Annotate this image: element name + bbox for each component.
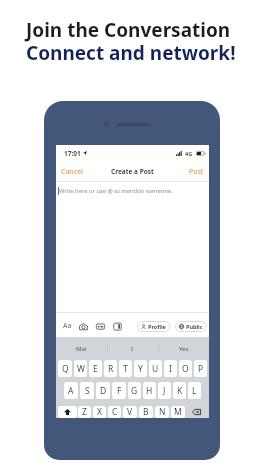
button[interactable]: Yes xyxy=(158,337,209,360)
staticText: Cancel xyxy=(61,167,83,177)
staticText: J xyxy=(163,385,166,397)
button[interactable]: M xyxy=(171,406,185,418)
button[interactable]: Mai xyxy=(56,337,107,360)
staticText: V xyxy=(127,406,133,418)
staticText: L xyxy=(192,385,197,397)
button[interactable]: F xyxy=(112,382,126,399)
staticText: 17:01 xyxy=(64,149,81,158)
staticText: Connect and network! xyxy=(26,40,236,66)
button[interactable]: T xyxy=(119,360,132,377)
staticText: N xyxy=(159,406,166,418)
staticText: Join the Conversation xyxy=(26,17,231,43)
button[interactable]: A xyxy=(64,382,78,399)
staticText: Create a Post xyxy=(111,167,154,176)
button[interactable]: X xyxy=(93,406,106,418)
button[interactable]: V xyxy=(123,406,137,418)
staticText: C xyxy=(112,406,118,418)
staticText: K xyxy=(177,385,183,397)
staticText: U xyxy=(152,363,159,375)
staticText: 4G xyxy=(185,150,193,157)
button[interactable]: Cancel xyxy=(60,161,84,182)
staticText: Write here or use @ to mention someone. xyxy=(59,187,173,195)
button[interactable]: W xyxy=(74,360,87,377)
button[interactable]: Z xyxy=(78,406,91,418)
button[interactable]: Backspace xyxy=(186,406,207,418)
button[interactable]: Aa xyxy=(62,321,72,331)
staticText: Mai xyxy=(76,345,87,353)
button[interactable]: E xyxy=(89,360,102,377)
staticText: F xyxy=(117,385,122,397)
button[interactable]: G xyxy=(128,382,141,399)
staticText: Aa xyxy=(63,321,72,331)
button[interactable]: D xyxy=(96,382,110,399)
staticText: T xyxy=(123,363,128,375)
staticText: H xyxy=(146,385,153,397)
staticText: W xyxy=(77,363,85,375)
button[interactable]: Post xyxy=(189,161,204,182)
button[interactable]: U xyxy=(149,360,162,377)
staticText: Yes xyxy=(179,345,189,353)
button[interactable]: Photo xyxy=(79,322,88,331)
staticText: Profile xyxy=(148,323,166,330)
staticText: E xyxy=(93,363,98,375)
staticText: B xyxy=(143,406,149,418)
button[interactable]: L xyxy=(188,382,201,399)
button[interactable]: R xyxy=(104,360,117,377)
button[interactable]: GIF xyxy=(96,322,105,331)
button[interactable]: Q xyxy=(58,360,72,377)
button[interactable]: Public xyxy=(175,321,207,332)
button[interactable]: C xyxy=(108,406,121,418)
staticText: P xyxy=(198,363,204,375)
staticText: Q xyxy=(62,363,69,375)
button[interactable]: S xyxy=(80,382,94,399)
staticText: G xyxy=(131,385,138,397)
staticText: D xyxy=(100,385,107,397)
staticText: Post xyxy=(189,167,204,177)
staticText: O xyxy=(182,363,189,375)
button[interactable]: Profile xyxy=(137,321,170,332)
staticText: I xyxy=(169,363,172,375)
button[interactable]: Y xyxy=(134,360,147,377)
button[interactable]: Attachment xyxy=(113,322,122,331)
staticText: S xyxy=(85,385,90,397)
button[interactable]: P xyxy=(194,360,207,377)
staticText: R xyxy=(108,363,114,375)
staticText: Z xyxy=(82,406,87,418)
button[interactable]: B xyxy=(139,406,153,418)
button[interactable]: N xyxy=(155,406,169,418)
staticText: I xyxy=(131,345,134,353)
button[interactable]: I xyxy=(107,337,158,360)
button[interactable]: Shift xyxy=(58,406,77,418)
staticText: A xyxy=(68,385,74,397)
staticText: Y xyxy=(138,363,143,375)
button[interactable]: I xyxy=(164,360,177,377)
button[interactable]: O xyxy=(179,360,192,377)
staticText: M xyxy=(174,406,182,418)
button[interactable]: J xyxy=(158,382,171,399)
button[interactable]: H xyxy=(143,382,156,399)
button[interactable]: K xyxy=(173,382,186,399)
staticText: X xyxy=(97,406,102,418)
staticText: Public xyxy=(186,323,203,330)
